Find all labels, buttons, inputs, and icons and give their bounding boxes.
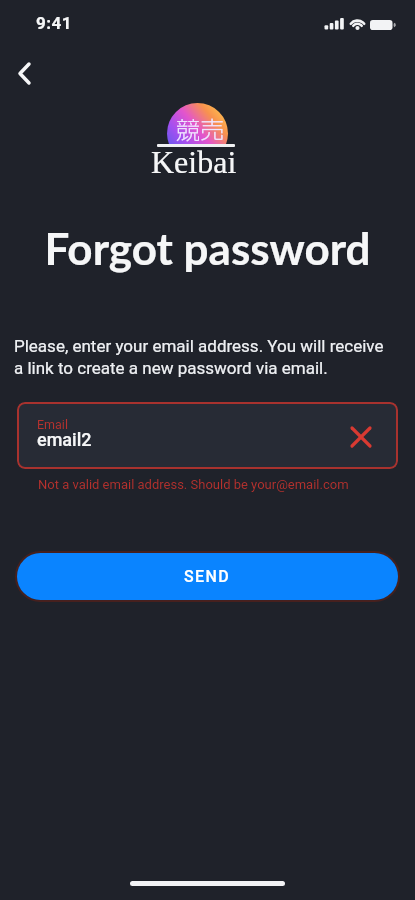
staticText: 9:41	[36, 13, 73, 33]
button[interactable]: SEND	[17, 553, 398, 600]
staticText: Not a valid email address. Should be you…	[38, 477, 349, 492]
staticText: Please, enter your email address. You wi…	[14, 336, 384, 378]
staticText: Keibai	[151, 144, 237, 179]
staticText: Forgot password	[0, 222, 415, 275]
staticText: SEND	[184, 567, 231, 586]
button[interactable]: Email	[17, 402, 398, 469]
staticText: 競売	[176, 114, 224, 147]
staticText: email2	[37, 429, 92, 450]
staticText: Email	[37, 417, 68, 432]
button[interactable]	[5, 53, 45, 93]
